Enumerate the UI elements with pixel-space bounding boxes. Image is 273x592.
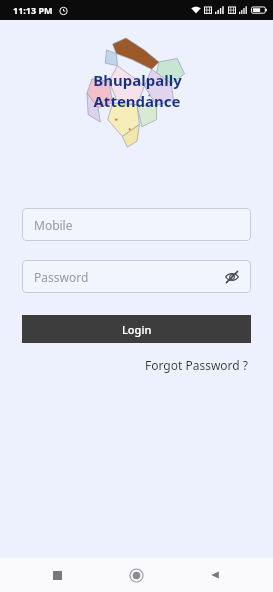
button[interactable]: Show password — [223, 268, 241, 286]
button[interactable]: Back — [198, 558, 232, 592]
staticText: Login — [122, 322, 152, 337]
staticText: Forgot Password ? — [145, 357, 249, 373]
staticText: Password — [34, 269, 89, 285]
button[interactable]: Password — [22, 260, 251, 293]
button[interactable]: Recents — [40, 558, 74, 592]
button[interactable]: Mobile — [22, 208, 251, 241]
staticText: Mobile — [34, 217, 73, 233]
button[interactable]: Login — [22, 315, 251, 343]
staticText: Attendance — [93, 91, 181, 111]
button[interactable]: Forgot Password ? — [143, 355, 251, 375]
button[interactable]: Home — [119, 558, 153, 592]
staticText: Bhupalpally — [93, 70, 182, 90]
staticText: 11:13 PM — [13, 4, 53, 16]
